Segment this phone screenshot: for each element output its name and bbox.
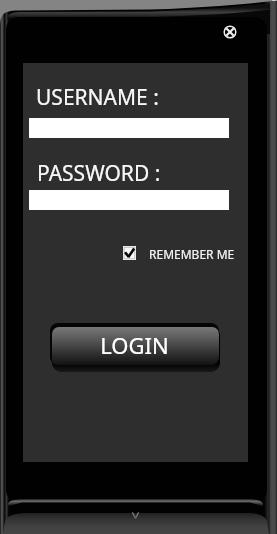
staticText: REMEMBER ME xyxy=(149,246,235,262)
button[interactable]: LOGIN xyxy=(50,323,219,365)
staticText: USERNAME : xyxy=(36,83,159,112)
button[interactable]: Close xyxy=(218,20,241,43)
button[interactable]: REMEMBER ME xyxy=(120,243,241,265)
staticText: LOGIN xyxy=(100,330,169,360)
staticText: PASSWORD : xyxy=(37,159,161,188)
